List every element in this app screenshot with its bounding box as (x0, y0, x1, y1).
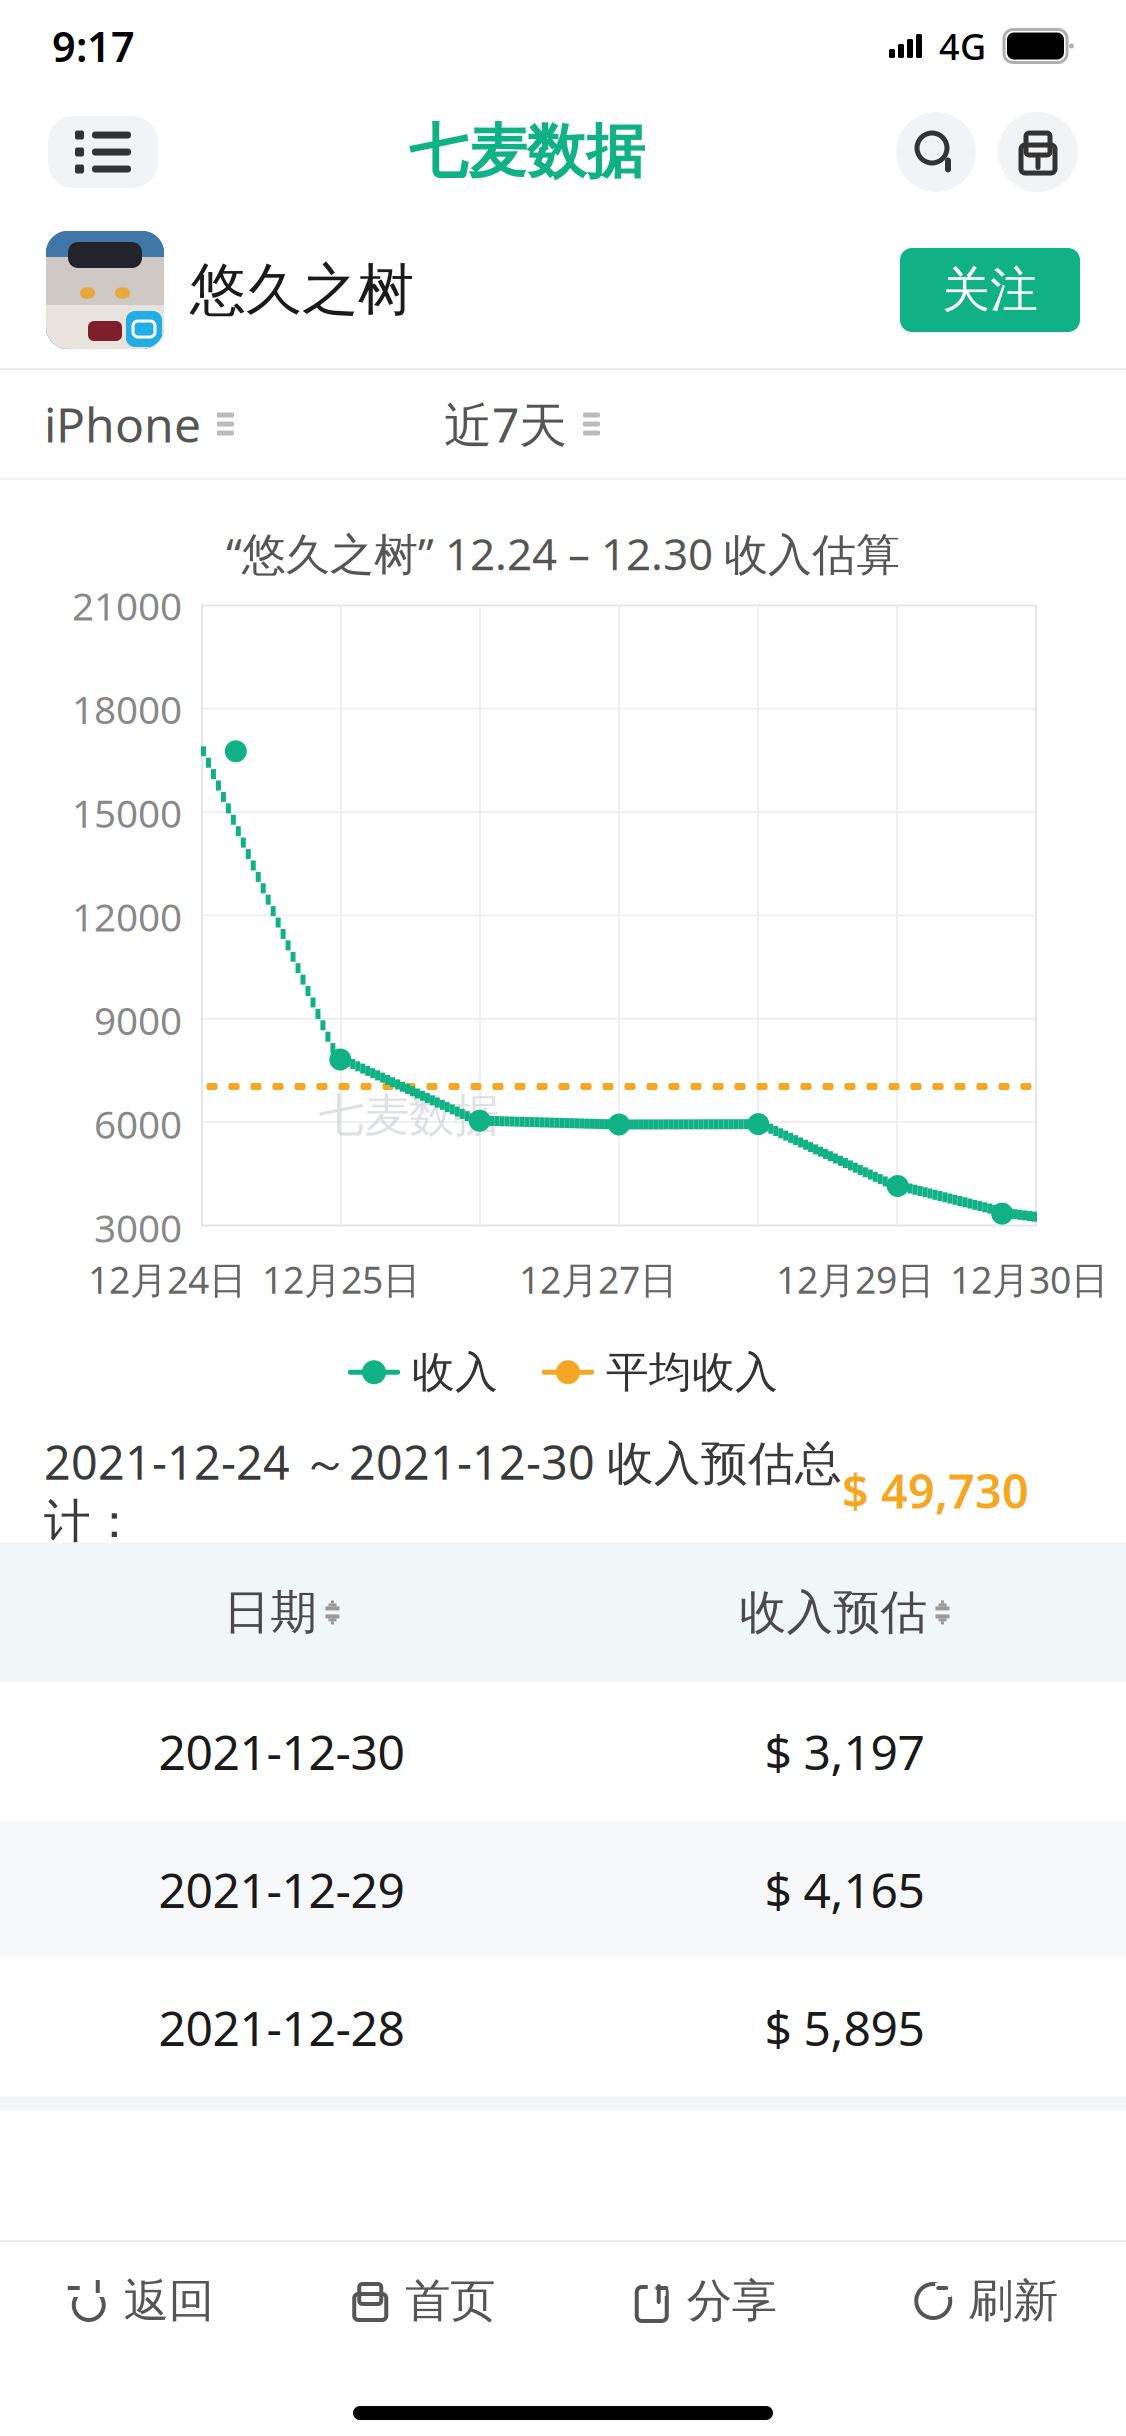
staticText: $ 49,730 (842, 1459, 1029, 1521)
staticText: 返回 (124, 2273, 214, 2329)
staticText: 收入 (412, 1346, 498, 1398)
staticText: 12月24日 (88, 1254, 246, 1304)
button[interactable]: 搜索 (896, 112, 976, 192)
staticText: 2021-12-30 (158, 1719, 404, 1783)
staticText: iPhone (44, 392, 201, 456)
staticText: 12000 (72, 891, 182, 942)
staticText: 2021-12-28 (158, 1995, 404, 2059)
staticText: 关注 (942, 260, 1038, 319)
button[interactable]: 日期 (0, 1584, 563, 1641)
button[interactable]: 近7天 (444, 392, 600, 456)
staticText: 平均收入 (606, 1346, 778, 1398)
button[interactable]: 菜单 (48, 116, 158, 188)
button[interactable]: 2021-12-29 (0, 1820, 1126, 1958)
staticText: 3000 (94, 1202, 182, 1253)
staticText: 七麦数据 (409, 116, 645, 188)
staticText: 18000 (72, 683, 182, 735)
staticText: 近7天 (444, 392, 567, 456)
staticText: 12月25日 (262, 1254, 420, 1304)
staticText: 9:17 (52, 19, 135, 73)
button[interactable]: 返回 (0, 2273, 281, 2329)
button[interactable]: 首页 (998, 112, 1078, 192)
staticText: 2021-12-29 (158, 1857, 404, 1921)
staticText: $ 3,197 (764, 1719, 924, 1783)
button[interactable]: 首页 (281, 2273, 563, 2329)
staticText: 4G (939, 22, 986, 70)
staticText: 12月29日 (776, 1254, 934, 1304)
button[interactable]: 关注 (900, 248, 1080, 332)
staticText: 刷新 (968, 2273, 1058, 2329)
button[interactable]: 悠久之树 (46, 231, 414, 349)
staticText: 9000 (94, 994, 182, 1046)
staticText: 6000 (94, 1098, 182, 1149)
staticText: 12月27日 (519, 1254, 677, 1304)
button[interactable]: iPhone (44, 392, 234, 456)
staticText: 分享 (687, 2273, 777, 2329)
staticText: 15000 (72, 787, 182, 838)
button[interactable]: 收入预估 (563, 1584, 1126, 1641)
staticText: 悠久之树 (190, 256, 414, 324)
button[interactable]: 2021-12-30 (0, 1682, 1126, 1820)
staticText: “悠久之树” 12.24 – 12.30 收入估算 (226, 524, 900, 582)
staticText: 2021-12-24 ～2021-12-30 收入预估总计： (44, 1431, 842, 1550)
staticText: $ 4,165 (764, 1857, 924, 1921)
staticText: 收入预估 (739, 1584, 927, 1641)
staticText: 日期 (223, 1584, 317, 1641)
staticText: 七麦数据 (319, 1088, 499, 1143)
button[interactable]: 2021-12-28 (0, 1958, 1126, 2096)
staticText: 12月30日 (950, 1254, 1108, 1304)
staticText: 首页 (405, 2273, 495, 2329)
button[interactable]: 分享 (563, 2273, 844, 2329)
staticText: 21000 (72, 580, 182, 631)
button[interactable]: 刷新 (844, 2273, 1126, 2329)
staticText: $ 5,895 (764, 1995, 924, 2059)
